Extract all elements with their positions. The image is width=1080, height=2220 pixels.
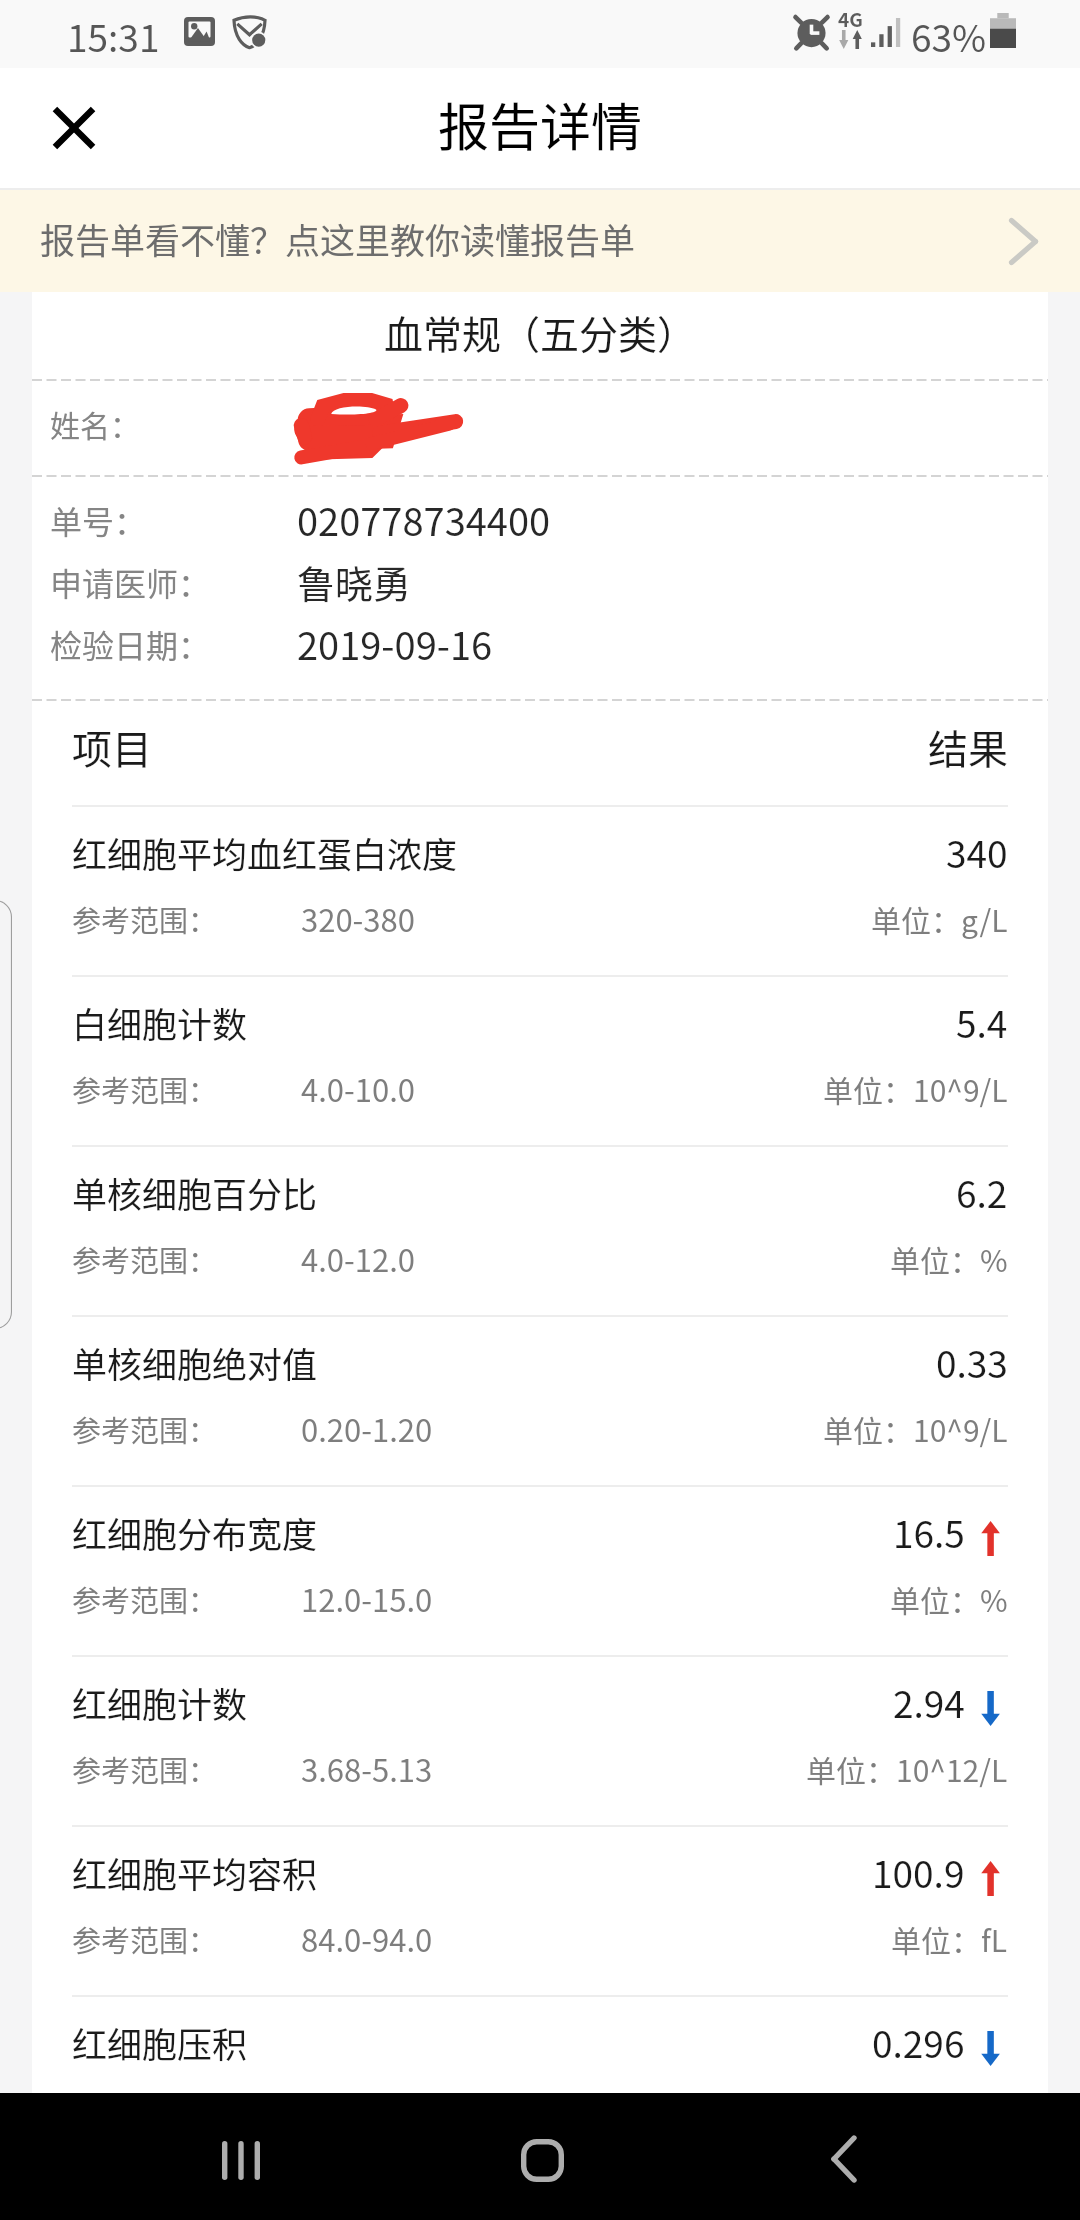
staticText: 单位：10^9/L	[823, 1407, 1008, 1450]
staticText: 报告详情	[438, 87, 643, 161]
button[interactable]: 红细胞分布宽度	[32, 1487, 1048, 1657]
staticText: 100.9	[872, 1845, 965, 1899]
staticText: 单核细胞百分比	[72, 1167, 318, 1218]
staticText: 340	[946, 825, 1008, 879]
staticText: 4.0-12.0	[301, 1236, 416, 1281]
staticText: 15:31	[67, 9, 160, 63]
staticText: 2.94	[893, 1675, 965, 1729]
button[interactable]: Recents	[191, 2110, 291, 2210]
staticText: 单核细胞绝对值	[72, 1337, 318, 1388]
staticText: 姓名：	[50, 402, 140, 445]
staticText: 单号：	[50, 497, 147, 543]
staticText: 检验日期：	[50, 621, 211, 667]
staticText: 项目	[72, 718, 152, 776]
staticText: 参考范围：	[72, 1578, 218, 1620]
staticText: 2019-09-16	[297, 616, 493, 671]
staticText: 参考范围：	[72, 898, 218, 940]
staticText: 红细胞压积	[72, 2017, 248, 2068]
staticText: 参考范围：	[72, 1068, 218, 1110]
staticText: 单位：%	[890, 1577, 1008, 1620]
button[interactable]: 报告单看不懂？点这里教你读懂报告单	[0, 190, 1080, 292]
button[interactable]: 红细胞平均容积	[32, 1827, 1048, 1997]
button[interactable]: 单核细胞绝对值	[32, 1317, 1048, 1487]
staticText: 红细胞平均血红蛋白浓度	[72, 827, 458, 878]
button[interactable]: Back	[794, 2109, 894, 2209]
staticText: 申请医师：	[50, 559, 211, 605]
staticText: 020778734400	[297, 492, 551, 547]
staticText: 6.2	[956, 1165, 1008, 1219]
staticText: 0.296	[872, 2015, 965, 2069]
staticText: 鲁晓勇	[297, 554, 412, 609]
staticText: 16.5	[893, 1505, 965, 1559]
staticText: 血常规（五分类）	[384, 304, 697, 360]
staticText: 红细胞计数	[72, 1677, 248, 1728]
staticText: 结果	[928, 718, 1008, 776]
staticText: 5.4	[956, 995, 1008, 1049]
staticText: 红细胞分布宽度	[72, 1507, 318, 1558]
staticText: 63%	[911, 9, 987, 63]
staticText: 单位：%	[890, 1237, 1008, 1280]
staticText: 单位：fL	[891, 1917, 1008, 1960]
staticText: 参考范围：	[72, 1238, 218, 1280]
staticText: 0.33	[936, 1335, 1008, 1389]
button[interactable]: 红细胞平均血红蛋白浓度	[32, 807, 1048, 977]
staticText: 4G	[838, 5, 863, 33]
staticText: 单位：g/L	[871, 897, 1008, 940]
staticText: 单位：10^12/L	[806, 1747, 1008, 1790]
staticText: 参考范围：	[72, 1748, 218, 1790]
button[interactable]: Close	[33, 87, 115, 169]
staticText: 84.0-94.0	[301, 1916, 433, 1961]
button[interactable]: 红细胞计数	[32, 1657, 1048, 1827]
button[interactable]: Home	[492, 2110, 592, 2210]
staticText: 单位：10^9/L	[823, 1067, 1008, 1110]
staticText: 320-380	[301, 896, 415, 941]
staticText: 白细胞计数	[72, 997, 248, 1048]
staticText: 3.68-5.13	[301, 1746, 433, 1791]
button[interactable]: 白细胞计数	[32, 977, 1048, 1147]
staticText: 参考范围：	[72, 1918, 218, 1960]
button[interactable]: 单核细胞百分比	[32, 1147, 1048, 1317]
staticText: 4.0-10.0	[301, 1066, 416, 1111]
staticText: 参考范围：	[72, 1408, 218, 1450]
staticText: 0.20-1.20	[301, 1406, 433, 1451]
staticText: 12.0-15.0	[301, 1576, 433, 1621]
button[interactable]: 红细胞压积	[32, 1997, 1048, 2093]
staticText: 报告单看不懂？点这里教你读懂报告单	[40, 213, 636, 264]
staticText: 红细胞平均容积	[72, 1847, 318, 1898]
